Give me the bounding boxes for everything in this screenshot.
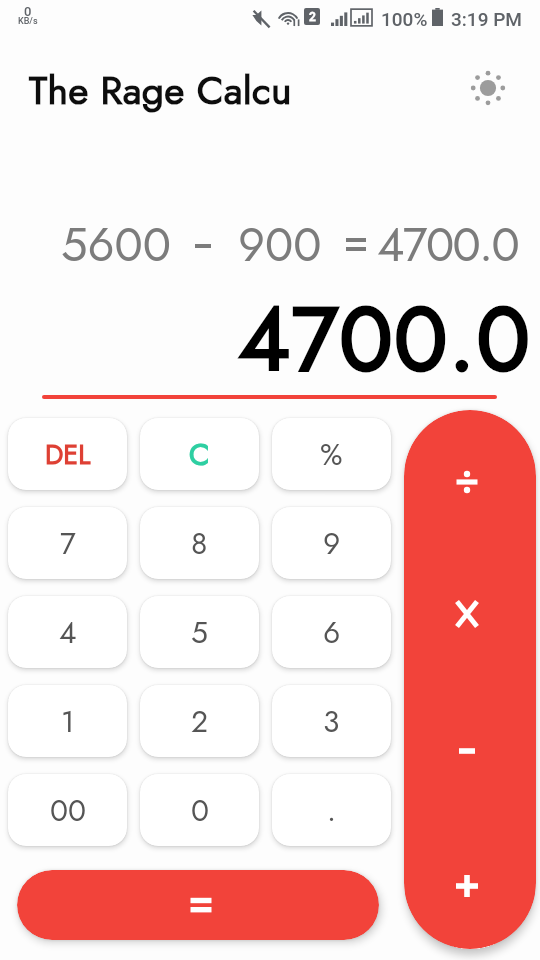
button[interactable]: C bbox=[140, 418, 259, 490]
button[interactable]: Toggle theme bbox=[465, 65, 511, 111]
staticText: 2 bbox=[191, 700, 209, 743]
staticText: 1 bbox=[61, 700, 75, 743]
button[interactable]: % bbox=[272, 418, 391, 490]
button[interactable]: 5 bbox=[140, 596, 259, 668]
button[interactable]: . bbox=[272, 774, 391, 846]
staticText: 0 bbox=[191, 789, 209, 832]
staticText: The Rage Calcu bbox=[29, 62, 292, 118]
staticText: C bbox=[189, 433, 210, 476]
staticText: % bbox=[320, 433, 343, 476]
staticText: 4700.0 bbox=[377, 211, 519, 279]
button[interactable]: divide bbox=[404, 410, 536, 544]
button[interactable]: 6 bbox=[272, 596, 391, 668]
staticText: 9 bbox=[323, 522, 341, 565]
staticText: 4700.0 bbox=[0, 275, 531, 404]
button[interactable]: 0 bbox=[140, 774, 259, 846]
staticText: 5600 bbox=[61, 211, 171, 279]
button[interactable]: 8 bbox=[140, 507, 259, 579]
staticText: 8 bbox=[191, 522, 208, 565]
staticText: 0 bbox=[24, 4, 32, 19]
staticText: 5 bbox=[191, 611, 208, 654]
staticText: 3 bbox=[323, 700, 340, 743]
staticText: 4 bbox=[59, 611, 77, 654]
staticText: 6 bbox=[323, 611, 341, 654]
button[interactable]: 9 bbox=[272, 507, 391, 579]
staticText: DEL bbox=[45, 435, 91, 474]
button[interactable]: 4 bbox=[8, 596, 127, 668]
staticText: . bbox=[327, 789, 336, 832]
button[interactable] bbox=[17, 870, 379, 940]
button[interactable]: multiply bbox=[404, 544, 536, 679]
button[interactable]: DEL bbox=[8, 418, 127, 490]
button[interactable]: plus bbox=[404, 814, 536, 949]
button[interactable]: 00 bbox=[8, 774, 127, 846]
button[interactable]: 7 bbox=[8, 507, 127, 579]
button[interactable]: 3 bbox=[272, 685, 391, 757]
staticText: 900 bbox=[238, 211, 322, 279]
staticText: 00 bbox=[50, 789, 86, 832]
staticText: 100% bbox=[381, 8, 428, 30]
staticText: 7 bbox=[60, 522, 76, 565]
button[interactable]: minus bbox=[404, 679, 536, 814]
staticText: 2 bbox=[309, 10, 316, 24]
staticText: 3:19 PM bbox=[451, 8, 522, 30]
button[interactable]: 1 bbox=[8, 685, 127, 757]
staticText: KB/s bbox=[18, 16, 38, 27]
button[interactable]: 2 bbox=[140, 685, 259, 757]
